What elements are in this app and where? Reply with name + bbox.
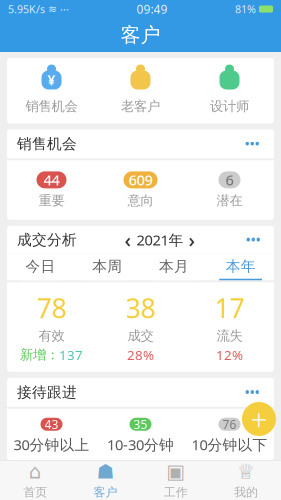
staticText: 78 (36, 290, 66, 326)
button[interactable]: 新增 (242, 399, 276, 438)
staticText: 流失 (216, 328, 242, 344)
staticText: 35 (133, 416, 147, 432)
button[interactable] (185, 67, 274, 114)
staticText: 5.95K/s (8, 2, 45, 16)
staticText: 本年 (226, 257, 256, 275)
staticText: 意向 (127, 192, 153, 209)
button[interactable]: 609 (96, 171, 185, 209)
button[interactable]: 更多 (241, 381, 264, 403)
staticText: 客户 (93, 485, 117, 500)
staticText: ‹ (124, 226, 131, 253)
staticText: ··· (60, 2, 69, 16)
button[interactable]: 今日 (7, 254, 74, 280)
staticText: 38 (125, 290, 155, 326)
staticText: 28% (127, 346, 154, 364)
staticText: ••• (246, 232, 261, 248)
button[interactable]: ¥ (7, 67, 96, 114)
staticText: ••• (245, 384, 260, 400)
staticText: ⌂ (29, 460, 42, 483)
staticText: 销售机会 (25, 98, 77, 114)
button[interactable]: 35 (96, 418, 185, 454)
staticText: 成交 (127, 328, 153, 344)
staticText: 成交分析 (17, 231, 77, 249)
staticText: ≋ (48, 3, 57, 15)
button[interactable]: 本周 (74, 254, 141, 280)
staticText: 609 (128, 170, 152, 190)
staticText: › (188, 226, 195, 253)
staticText: ••• (245, 136, 260, 152)
button[interactable]: ☗ (70, 460, 140, 500)
button[interactable]: 上一年 (119, 226, 136, 253)
button[interactable]: 44 (7, 171, 96, 209)
staticText: 接待跟进 (17, 383, 77, 401)
staticText: 10分钟以下 (191, 435, 267, 454)
staticText: 137 (59, 346, 83, 364)
staticText: 设计师 (210, 98, 249, 114)
staticText: 6 (225, 170, 233, 190)
staticText: 2021年 (136, 230, 183, 249)
button[interactable] (96, 67, 185, 114)
button[interactable]: ▣ (140, 460, 211, 500)
staticText: 重要 (38, 192, 64, 209)
button[interactable]: 43 (7, 418, 96, 454)
staticText: 本月 (159, 257, 189, 275)
staticText: 首页 (23, 485, 47, 500)
staticText: 今日 (25, 257, 55, 275)
staticText: 12% (216, 346, 243, 364)
staticText: 81% (235, 2, 256, 16)
staticText: ¥ (47, 71, 55, 89)
staticText: 17 (214, 290, 244, 326)
staticText: 我的 (234, 485, 258, 500)
staticText: 客户 (120, 23, 160, 47)
button[interactable]: ⌂ (0, 460, 70, 500)
staticText: 30分钟以上 (13, 435, 89, 454)
staticText: 10-30分钟 (107, 435, 174, 454)
staticText: 44 (43, 170, 59, 190)
staticText: 本周 (92, 257, 122, 275)
staticText: ♕ (237, 460, 255, 483)
staticText: 销售机会 (17, 135, 77, 153)
staticText: ▣ (166, 460, 185, 483)
button[interactable]: 本月 (140, 254, 207, 280)
button[interactable]: ♕ (211, 460, 281, 500)
button[interactable]: 76 (185, 418, 274, 454)
button[interactable]: 更多 (243, 229, 264, 251)
button[interactable]: 更多 (241, 133, 264, 155)
staticText: 有效 (38, 328, 64, 344)
staticText: ☗ (96, 460, 114, 483)
staticText: 新增： (20, 347, 59, 363)
button[interactable]: 6 (185, 171, 274, 209)
staticText: 43 (44, 416, 58, 432)
button[interactable]: 下一年 (183, 226, 200, 253)
staticText: 76 (222, 416, 236, 432)
staticText: 工作 (164, 485, 188, 500)
staticText: + (250, 399, 267, 438)
staticText: 09:49 (136, 1, 167, 17)
staticText: 老客户 (121, 98, 160, 114)
staticText: 潜在 (216, 192, 242, 209)
button[interactable]: 本年 (207, 254, 274, 280)
